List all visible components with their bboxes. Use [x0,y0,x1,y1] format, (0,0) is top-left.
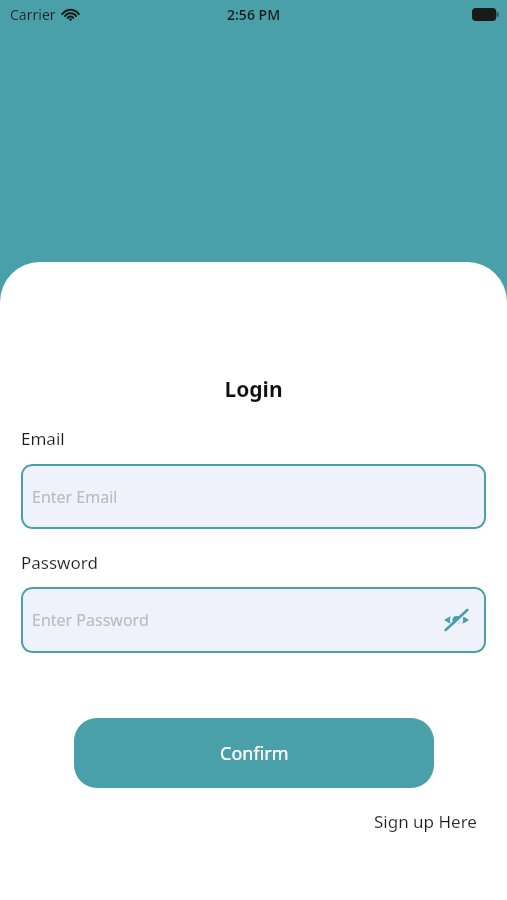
button[interactable]: Sign up Here [372,808,479,835]
staticText: Enter Password [32,609,149,631]
button[interactable]: Show password [439,603,473,637]
staticText: Confirm [220,741,289,766]
staticText: 2:56 PM [227,5,281,24]
button[interactable]: Enter Password [21,587,486,653]
button[interactable]: Enter Email [21,464,486,529]
staticText: Sign up Here [374,810,477,833]
staticText: Login [0,375,507,404]
staticText: Password [21,551,98,574]
button[interactable]: Confirm [74,718,434,788]
staticText: Email [21,427,65,450]
staticText: Enter Email [32,486,118,508]
staticText: Carrier [10,5,56,24]
